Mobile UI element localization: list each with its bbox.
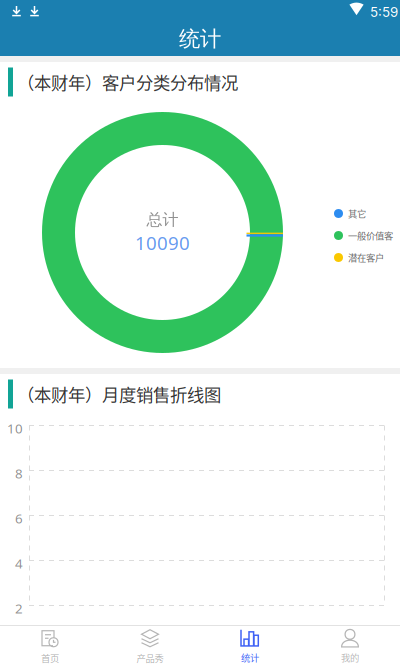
staticText: 10 [7,419,23,437]
staticText: 统计 [179,26,221,52]
button[interactable]: 我的 [300,626,400,667]
staticText: （本财年）客户分类分布情况 [17,69,238,95]
staticText: 一般价值客 [348,229,393,242]
staticText: 4 [15,554,23,572]
staticText: 6 [15,509,23,527]
staticText: 统计 [241,651,259,664]
staticText: 其它 [348,207,366,220]
button[interactable]: 产品秀 [100,626,200,667]
button[interactable]: 统计 [200,626,300,667]
staticText: 总计 [146,210,178,229]
staticText: 产品秀 [136,651,163,665]
staticText: 8 [15,464,23,482]
staticText: 潜在客户 [348,251,384,264]
staticText: （本财年）月度销售折线图 [17,381,221,407]
staticText: 10090 [135,230,190,255]
staticText: 我的 [341,651,359,664]
button[interactable]: 首页 [0,626,100,667]
staticText: 5:59 [370,4,398,20]
staticText: 2 [15,599,23,617]
staticText: 首页 [41,651,59,665]
